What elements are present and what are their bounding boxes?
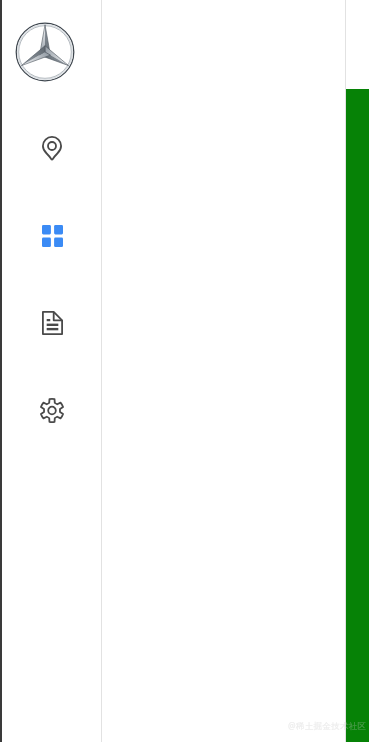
button[interactable]: Documents [16,299,88,347]
staticText: @稀土掘金技术社区 [288,720,367,732]
button[interactable]: Locations [16,124,88,172]
button[interactable]: Settings [16,386,88,434]
button[interactable]: Dashboard [16,212,88,260]
button[interactable]: Mercedes-Benz home [8,15,82,89]
